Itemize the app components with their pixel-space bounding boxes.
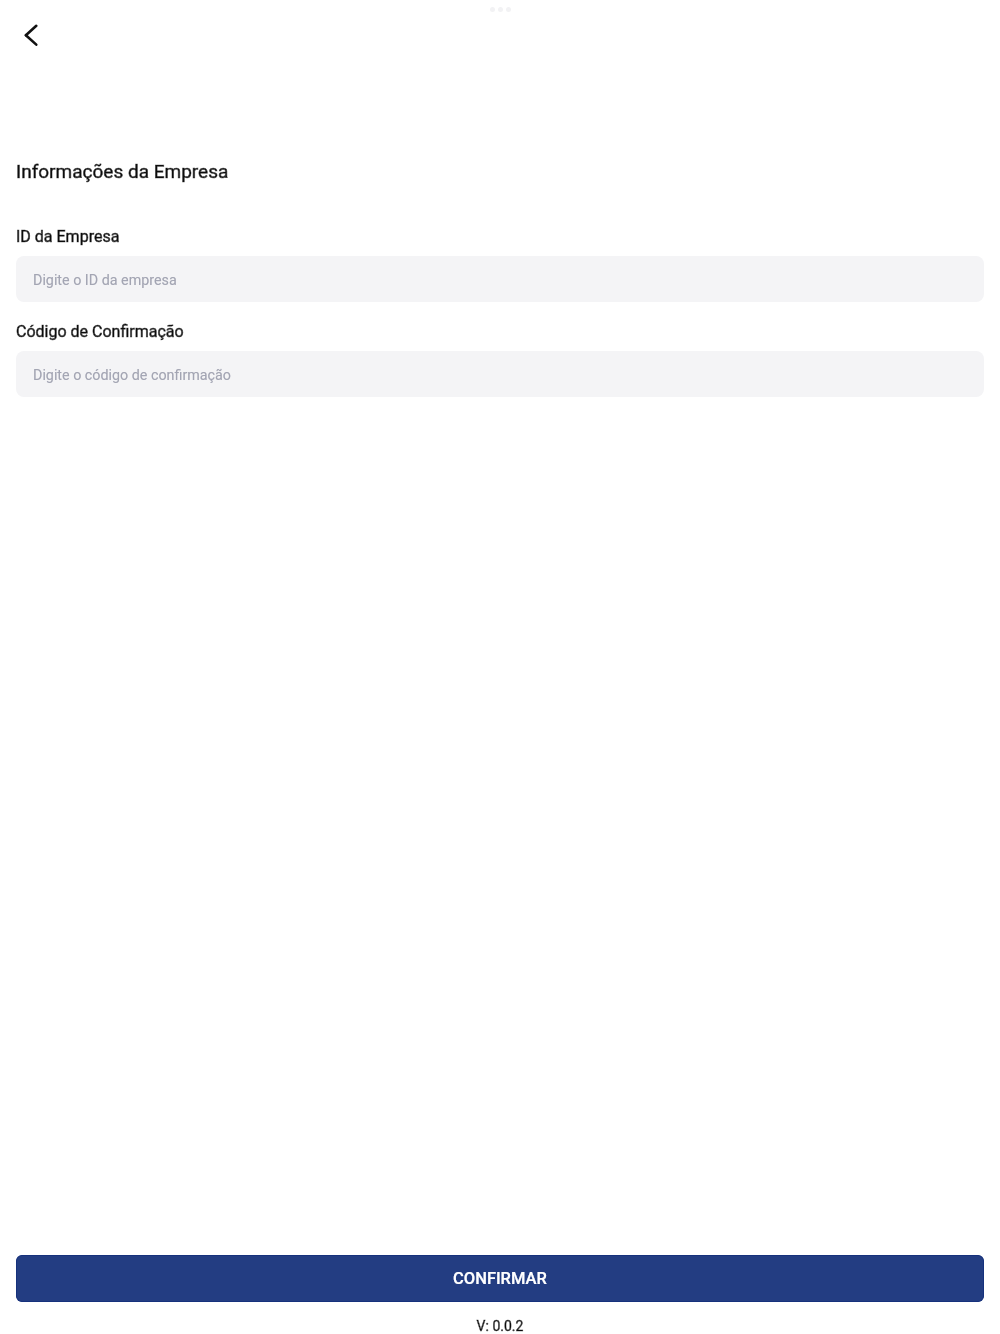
staticText: V: 0.0.2 bbox=[0, 1318, 1000, 1334]
button[interactable]: Digite o código de confirmação bbox=[16, 351, 984, 397]
staticText: V: 0.0.2 bbox=[0, 1318, 1000, 1334]
staticText: ID da Empresa bbox=[16, 227, 1000, 246]
staticText: Código de Confirmação bbox=[16, 322, 1000, 341]
staticText: Digite o código de confirmação bbox=[33, 367, 231, 384]
staticText: Digite o ID da empresa bbox=[33, 272, 177, 289]
staticText: CONFIRMAR bbox=[453, 1269, 547, 1288]
staticText: Informações da Empresa bbox=[16, 160, 1000, 182]
button[interactable]: Back bbox=[8, 13, 52, 57]
staticText: Código de Confirmação bbox=[16, 322, 1000, 341]
button[interactable]: Digite o ID da empresa bbox=[16, 256, 984, 302]
staticText: Informações da Empresa bbox=[16, 160, 1000, 182]
staticText: ID da Empresa bbox=[16, 227, 1000, 246]
button[interactable]: CONFIRMAR bbox=[16, 1255, 984, 1302]
